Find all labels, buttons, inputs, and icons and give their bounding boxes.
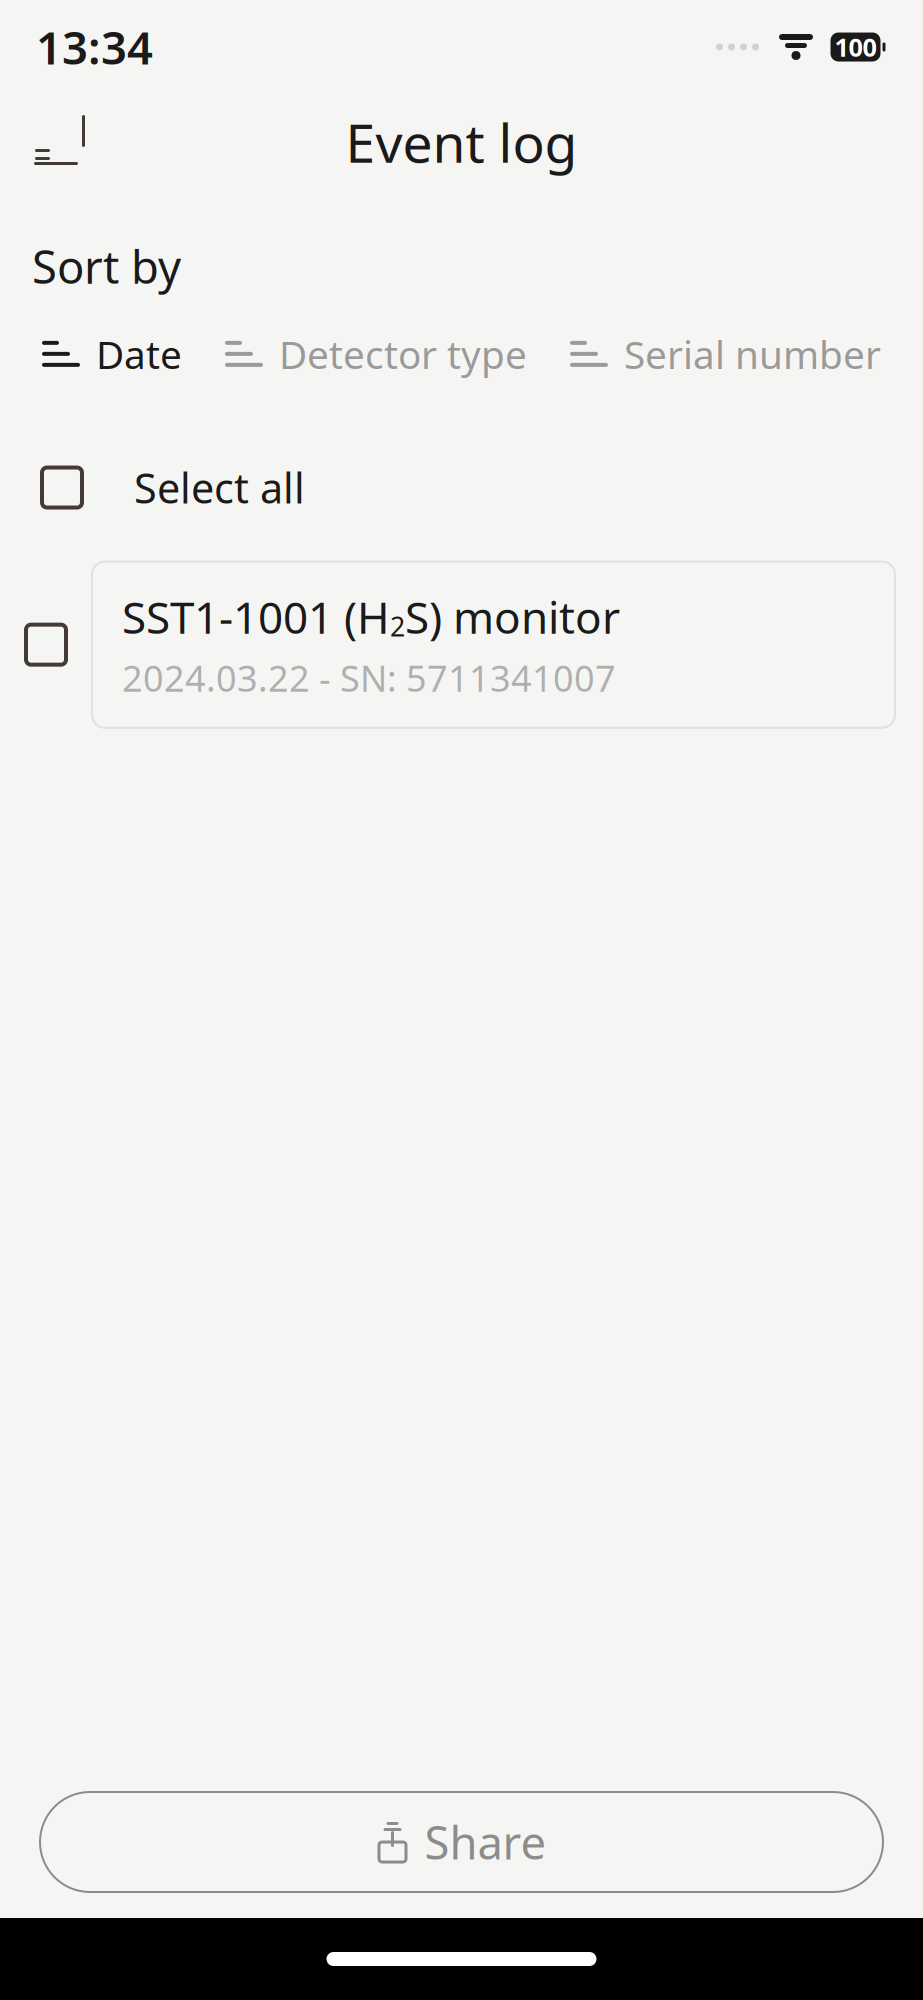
staticText: 13:34 [36, 17, 153, 77]
staticText: 2 [390, 609, 405, 644]
staticText: S) monitor [405, 587, 620, 646]
staticText: 2024.03.22 - SN: 5711341007 [122, 654, 616, 702]
staticText: SST1-1001 (H [122, 587, 390, 646]
staticText: Share [424, 1812, 546, 1872]
staticText: Serial number [624, 328, 881, 379]
staticText: Select all [134, 460, 305, 515]
staticText: 100 [834, 30, 876, 64]
staticText: Event log [345, 107, 577, 177]
staticText: Sort by [32, 236, 181, 296]
staticText: Detector type [279, 328, 527, 379]
button[interactable]: Select all [16, 441, 305, 533]
button[interactable]: Serial number [570, 320, 881, 387]
button[interactable]: Back [16, 98, 104, 186]
button[interactable]: Share [40, 1792, 883, 1892]
button[interactable]: Detector type [225, 320, 527, 387]
button[interactable]: SST1-1001 (H [92, 561, 895, 728]
button[interactable]: Date [42, 320, 182, 387]
button[interactable]: Select event [0, 574, 92, 716]
staticText: Date [96, 328, 182, 379]
